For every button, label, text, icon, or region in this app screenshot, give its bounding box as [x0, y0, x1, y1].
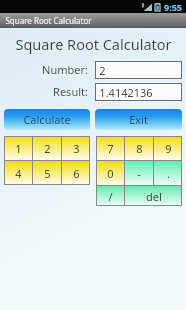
staticText: 0: [107, 166, 114, 181]
staticText: 4: [15, 166, 22, 181]
staticText: Exit: [129, 112, 148, 127]
button[interactable]: 6: [62, 161, 90, 185]
button[interactable]: Calculate: [4, 109, 90, 130]
button[interactable]: 4: [4, 161, 32, 185]
staticText: 2: [99, 63, 106, 78]
button[interactable]: 1: [4, 136, 32, 160]
staticText: 9: [165, 141, 172, 156]
staticText: Result:: [53, 84, 88, 99]
button[interactable]: 1.4142136: [95, 83, 182, 101]
staticText: .: [167, 166, 170, 181]
staticText: 9:55: [164, 1, 182, 13]
staticText: Square Root Calculator: [5, 15, 92, 26]
button[interactable]: 3: [62, 136, 90, 160]
staticText: 1.4142136: [99, 85, 153, 100]
staticText: -: [137, 166, 141, 181]
button[interactable]: .: [154, 161, 182, 185]
staticText: /: [108, 189, 113, 204]
button[interactable]: 8: [125, 136, 153, 160]
staticText: 7: [107, 141, 114, 156]
button[interactable]: -: [125, 161, 153, 185]
staticText: del: [146, 189, 162, 204]
button[interactable]: 5: [33, 161, 61, 185]
staticText: 2: [44, 141, 51, 156]
staticText: 1: [15, 141, 22, 156]
button[interactable]: /: [96, 186, 124, 206]
staticText: Calculate: [23, 112, 71, 127]
staticText: 3: [73, 141, 80, 156]
staticText: Number:: [42, 62, 88, 77]
staticText: 6: [73, 166, 80, 181]
button[interactable]: 2: [95, 61, 182, 79]
button[interactable]: del: [125, 186, 182, 206]
staticText: Square Root Calculator: [15, 34, 172, 54]
button[interactable]: Exit: [95, 109, 182, 130]
button[interactable]: 7: [96, 136, 124, 160]
button[interactable]: 9: [154, 136, 182, 160]
staticText: 5: [44, 166, 51, 181]
staticText: 8: [136, 141, 143, 156]
button[interactable]: 2: [33, 136, 61, 160]
button[interactable]: 0: [96, 161, 124, 185]
